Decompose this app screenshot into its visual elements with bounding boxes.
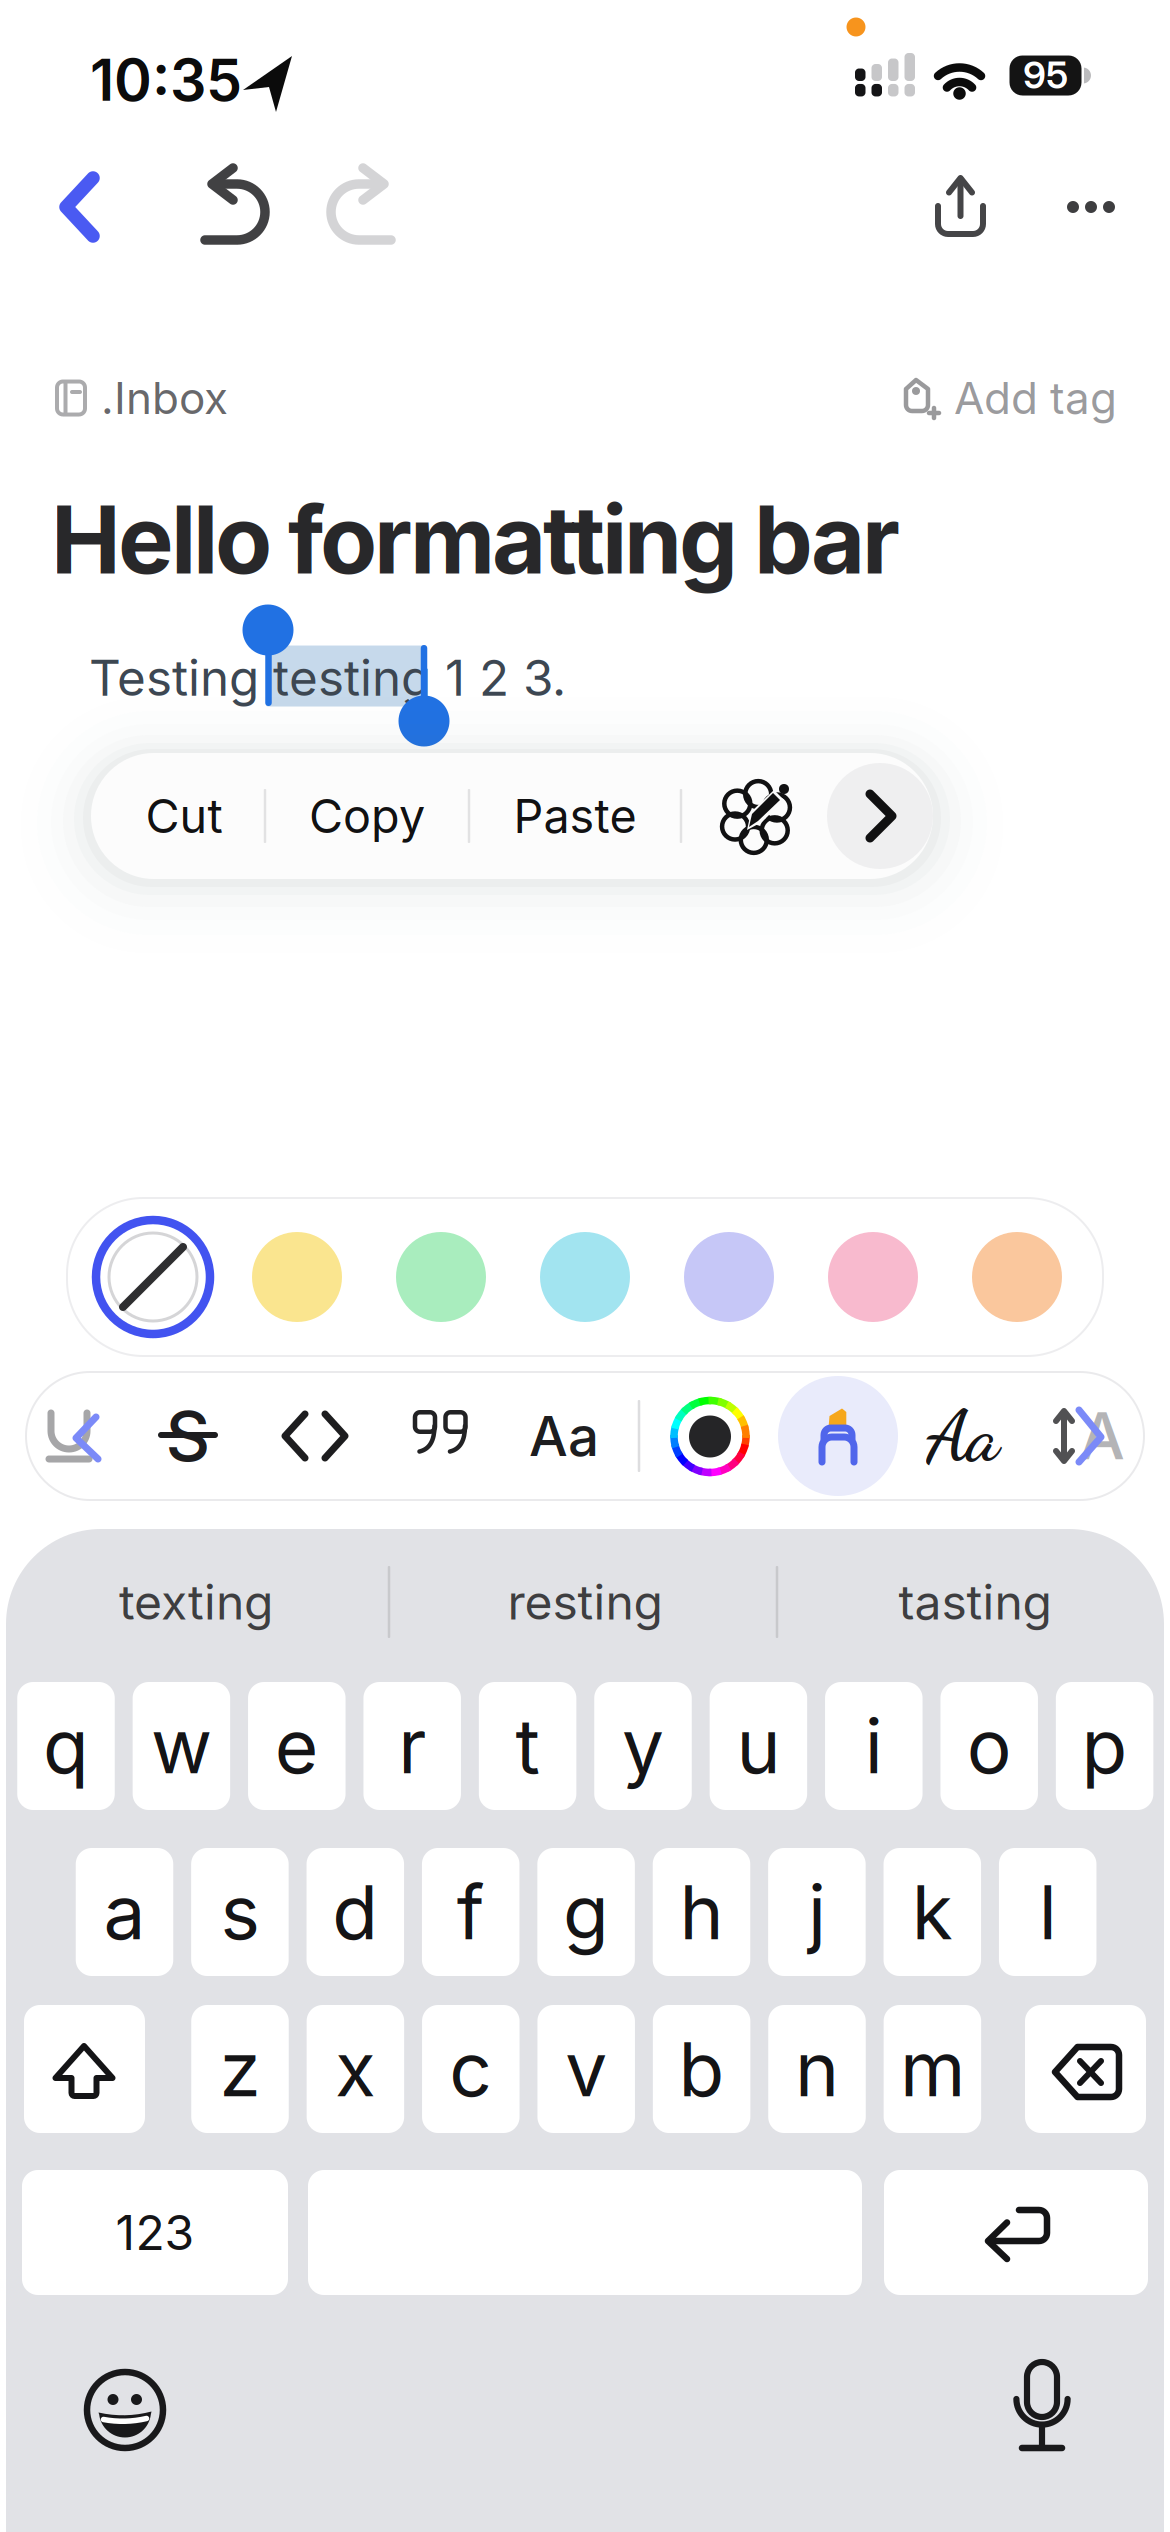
button[interactable]: Return: [884, 2170, 1148, 2295]
button[interactable]: More actions: [827, 763, 933, 869]
button[interactable]: a: [76, 1848, 173, 1976]
button[interactable]: v: [537, 2005, 635, 2133]
staticText: texting: [119, 1573, 273, 1631]
button[interactable]: .Inbox: [56, 371, 228, 425]
button[interactable]: Highlight color: [684, 1232, 774, 1322]
button[interactable]: resting: [400, 1552, 770, 1652]
button[interactable]: f: [422, 1848, 519, 1976]
button[interactable]: k: [884, 1848, 981, 1976]
button[interactable]: Highlight color: [972, 1232, 1062, 1322]
staticText: i: [865, 1701, 883, 1791]
button[interactable]: p: [1056, 1682, 1153, 1810]
button[interactable]: Emoji: [82, 2367, 167, 2452]
button[interactable]: Highlight color: [396, 1232, 486, 1322]
button[interactable]: n: [768, 2005, 866, 2133]
staticText: Paste: [513, 788, 636, 844]
button[interactable]: Highlight color: [252, 1232, 342, 1322]
button[interactable]: l: [999, 1848, 1096, 1976]
staticText: A: [1079, 1397, 1124, 1475]
staticText: k: [912, 1867, 953, 1957]
staticText: 10:35: [90, 45, 242, 115]
button[interactable]: More: [1063, 185, 1119, 229]
staticText: 95: [1023, 52, 1068, 98]
button[interactable]: c: [422, 2005, 520, 2133]
staticText: u: [736, 1701, 780, 1791]
staticText: o: [967, 1701, 1012, 1791]
staticText: q: [43, 1701, 89, 1791]
button[interactable]: d: [307, 1848, 404, 1976]
staticText: v: [565, 2024, 607, 2114]
button[interactable]: Text size: [1054, 1404, 1126, 1468]
button[interactable]: j: [768, 1848, 866, 1976]
staticText: p: [1082, 1701, 1128, 1791]
button[interactable]: Delete: [1025, 2005, 1146, 2133]
button[interactable]: h: [653, 1848, 750, 1976]
staticText: n: [795, 2024, 839, 2114]
staticText: a: [103, 1867, 145, 1957]
button[interactable]: Text style: [519, 1396, 609, 1476]
button[interactable]: No highlight: [92, 1216, 214, 1338]
button[interactable]: Underline: [35, 1405, 111, 1467]
button[interactable]: Highlight color: [540, 1232, 630, 1322]
staticText: resting: [507, 1573, 662, 1631]
staticText: Aa: [529, 1403, 599, 1469]
staticText: y: [622, 1701, 664, 1791]
button[interactable]: r: [363, 1682, 461, 1810]
button[interactable]: Strikethrough: [150, 1398, 226, 1474]
staticText: l: [1039, 1867, 1057, 1957]
button[interactable]: Redo: [320, 161, 410, 251]
button[interactable]: Font: [913, 1391, 1013, 1481]
staticText: w: [151, 1701, 212, 1791]
button[interactable]: Cut: [104, 753, 264, 879]
button[interactable]: z: [191, 2005, 289, 2133]
staticText: t: [516, 1701, 540, 1791]
staticText: d: [332, 1867, 378, 1957]
staticText: b: [679, 2024, 725, 2114]
button[interactable]: u: [710, 1682, 807, 1810]
button[interactable]: q: [17, 1682, 115, 1810]
staticText: S: [165, 1394, 210, 1478]
button[interactable]: Quote: [415, 1412, 465, 1462]
button[interactable]: Add tag: [903, 371, 1117, 425]
button[interactable]: e: [248, 1682, 346, 1810]
button[interactable]: m: [884, 2005, 981, 2133]
staticText: tasting: [898, 1573, 1051, 1631]
button[interactable]: Dictate: [1000, 2360, 1084, 2452]
button[interactable]: w: [133, 1682, 230, 1810]
staticText: j: [808, 1867, 826, 1957]
button[interactable]: Shift: [24, 2005, 145, 2133]
button[interactable]: Highlight: [778, 1376, 898, 1496]
button[interactable]: texting: [11, 1552, 381, 1652]
button[interactable]: y: [594, 1682, 692, 1810]
button[interactable]: b: [653, 2005, 750, 2133]
button[interactable]: Share: [915, 158, 1006, 254]
button[interactable]: i: [825, 1682, 923, 1810]
button[interactable]: Code: [277, 1402, 353, 1470]
button[interactable]: Numbers: [22, 2170, 288, 2295]
button[interactable]: Text color: [670, 1396, 750, 1476]
button[interactable]: Back: [39, 162, 119, 252]
button[interactable]: Copy: [272, 753, 462, 879]
button[interactable]: s: [191, 1848, 289, 1976]
button[interactable]: tasting: [790, 1552, 1160, 1652]
staticText: g: [563, 1867, 609, 1957]
staticText: h: [679, 1867, 723, 1957]
button[interactable]: Paste: [475, 753, 675, 879]
button[interactable]: x: [307, 2005, 404, 2133]
button[interactable]: o: [940, 1682, 1038, 1810]
staticText: c: [449, 2024, 492, 2114]
staticText: Copy: [309, 788, 425, 844]
staticText: Hello formatting bar: [51, 483, 900, 596]
staticText: Aa: [926, 1393, 999, 1479]
staticText: e: [275, 1701, 319, 1791]
button[interactable]: Writing Tools: [711, 770, 803, 862]
staticText: f: [457, 1867, 485, 1957]
button[interactable]: Highlight color: [828, 1232, 918, 1322]
button[interactable]: Undo: [186, 161, 276, 251]
button[interactable]: g: [537, 1848, 635, 1976]
staticText: z: [219, 2024, 260, 2114]
staticText: Add tag: [954, 371, 1117, 425]
staticText: .Inbox: [101, 371, 228, 425]
button[interactable]: t: [479, 1682, 576, 1810]
